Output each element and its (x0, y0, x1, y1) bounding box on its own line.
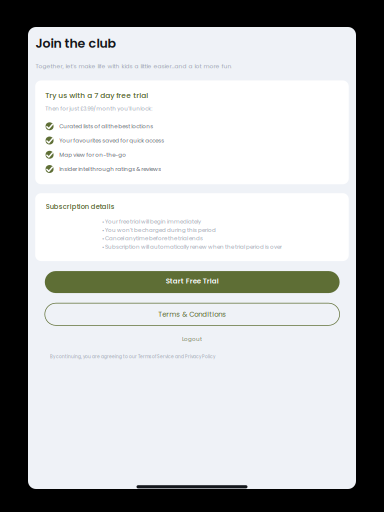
staticText: Together, let's make life with kids a li… (35, 62, 232, 70)
staticText: Join the club (35, 35, 116, 52)
staticText: Then for just £3.99/month you'll unlock: (45, 105, 152, 112)
staticText: • Subscription will automatically renew … (102, 243, 282, 251)
staticText: • Cancel anytime before the trial ends (102, 235, 203, 242)
staticText: • You won't be charged during this perio… (102, 226, 216, 234)
staticText: Terms & Conditions (158, 309, 226, 319)
staticText: Map view for on-the-go (59, 151, 126, 159)
staticText: • Your free trial will begin immediately (102, 218, 201, 225)
staticText: Curated lists of all the best loctions (59, 122, 153, 130)
button[interactable]: Logout (28, 335, 356, 343)
staticText: Insider intel through ratings & reviews (59, 165, 161, 173)
button[interactable]: Start Free Trial (45, 271, 340, 293)
staticText: Logout (182, 335, 202, 343)
staticText: Subscription details (46, 202, 115, 211)
button[interactable]: Terms & Conditions (45, 303, 340, 325)
staticText: Start Free Trial (166, 276, 219, 286)
staticText: Try us with a 7 day free trial (45, 90, 148, 100)
staticText: Your favourites saved for quick access (59, 137, 164, 144)
staticText: By continuing, you are agreeing to our T… (50, 354, 215, 360)
